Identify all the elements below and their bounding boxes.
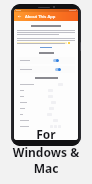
button[interactable]: Toggle setting xyxy=(17,57,75,64)
button[interactable]: Option xyxy=(17,123,75,129)
button[interactable]: Option xyxy=(17,99,75,105)
button[interactable]: Option xyxy=(17,105,75,111)
button[interactable]: Option xyxy=(17,111,75,117)
button[interactable]: Back xyxy=(17,14,22,19)
staticText: Windows & Mac xyxy=(0,144,92,176)
button[interactable]: Toggle setting xyxy=(55,68,61,71)
button[interactable]: Option xyxy=(17,93,75,99)
staticText: About This App xyxy=(25,14,56,20)
button[interactable]: Option xyxy=(17,117,75,123)
button[interactable]: Option xyxy=(17,87,75,93)
button[interactable]: Toggle setting xyxy=(17,66,75,73)
button[interactable]: Option xyxy=(17,81,75,87)
button[interactable]: Toggle setting xyxy=(53,59,59,62)
staticText: For xyxy=(36,126,56,142)
